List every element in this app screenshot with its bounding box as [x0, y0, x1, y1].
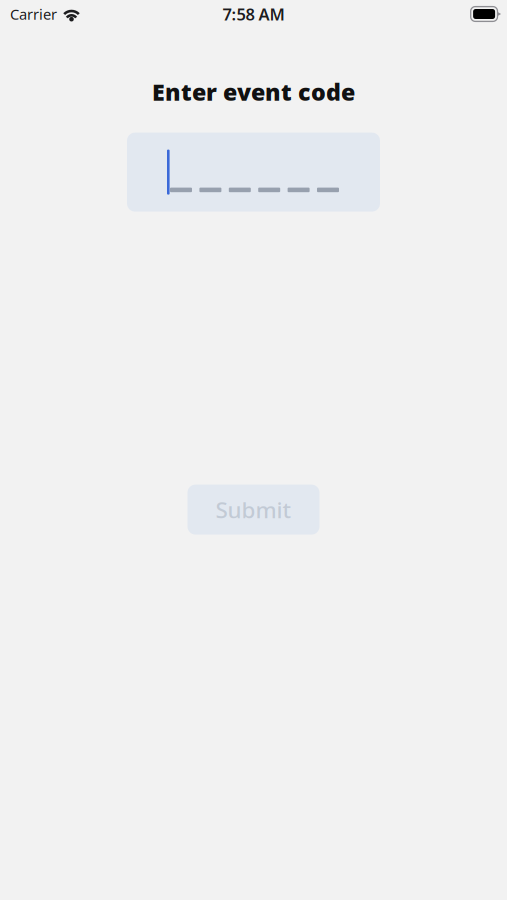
button[interactable]: Event code [127, 133, 380, 212]
staticText: Submit [215, 494, 291, 525]
staticText: Enter event code [152, 76, 355, 108]
staticText: 7:58 AM [222, 3, 284, 25]
staticText: Carrier [10, 4, 57, 24]
button[interactable]: Submit [187, 485, 319, 535]
